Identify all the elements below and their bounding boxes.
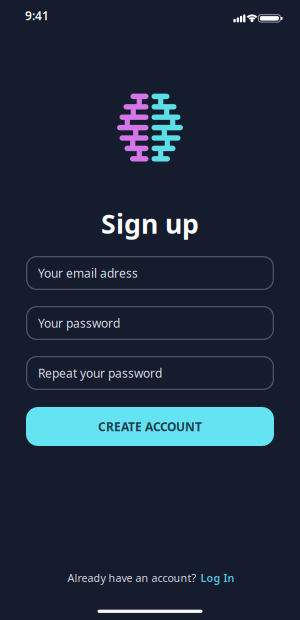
staticText: CREATE ACCOUNT bbox=[98, 418, 202, 434]
staticText: Sign up bbox=[101, 206, 199, 241]
staticText: Your password bbox=[38, 315, 120, 331]
button[interactable]: CREATE ACCOUNT bbox=[26, 407, 274, 446]
staticText: Already have an account? bbox=[67, 571, 196, 585]
staticText: Repeat your password bbox=[38, 365, 162, 381]
button[interactable]: Log In bbox=[200, 571, 234, 585]
staticText: Your email adress bbox=[38, 265, 138, 281]
button[interactable]: Your password bbox=[26, 306, 274, 340]
button[interactable]: Your email adress bbox=[26, 256, 274, 290]
button[interactable]: Repeat your password bbox=[26, 356, 274, 390]
staticText: 9:41 bbox=[25, 8, 49, 24]
staticText: Log In bbox=[200, 571, 234, 585]
